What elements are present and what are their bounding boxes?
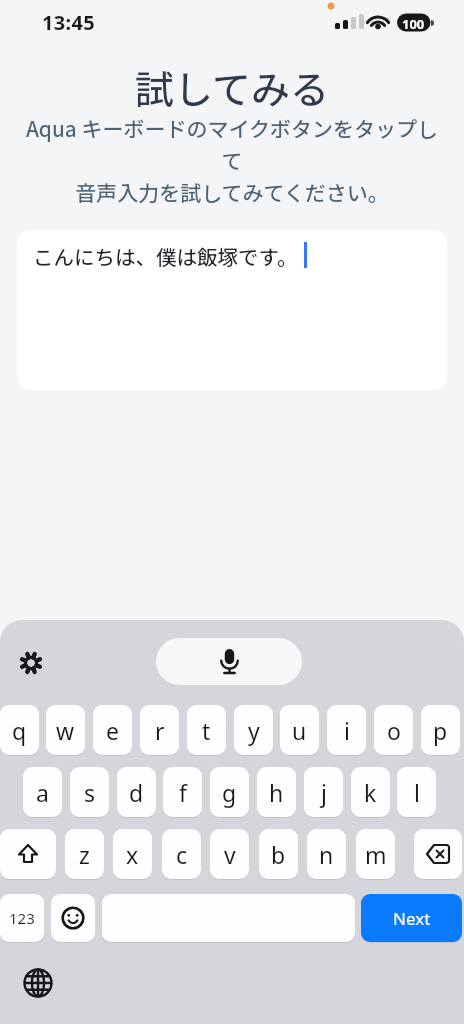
button[interactable]: z (65, 829, 104, 879)
button[interactable]: v (210, 829, 249, 879)
staticText: f (179, 777, 187, 808)
staticText: w (56, 715, 75, 746)
staticText: Aqua キーボードのマイクボタンをタップし て 音声入力を試してみてください。 (0, 113, 464, 207)
staticText: u (292, 715, 307, 746)
staticText: a (36, 777, 49, 808)
staticText: i (344, 715, 350, 746)
button[interactable] (414, 829, 462, 879)
button[interactable]: h (257, 767, 296, 817)
staticText: 13:45 (42, 9, 95, 36)
button[interactable]: a (23, 767, 62, 817)
button[interactable]: k (351, 767, 390, 817)
staticText: Next (393, 907, 431, 930)
button[interactable]: c (162, 829, 201, 879)
button[interactable]: Next (361, 894, 462, 942)
staticText: j (321, 777, 327, 808)
staticText: b (271, 839, 286, 870)
button[interactable]: b (259, 829, 298, 879)
staticText: v (224, 839, 236, 870)
button[interactable]: m (356, 829, 395, 879)
button[interactable] (51, 894, 95, 942)
staticText: 123 (9, 908, 35, 928)
button[interactable]: r (140, 705, 179, 755)
button[interactable] (156, 638, 302, 685)
button[interactable]: d (117, 767, 156, 817)
button[interactable] (0, 829, 56, 879)
staticText: h (269, 777, 284, 808)
staticText: k (364, 777, 377, 808)
staticText: こんにちは、僕は飯塚です。 (33, 241, 298, 271)
staticText: 100 (402, 15, 425, 33)
staticText: d (129, 777, 144, 808)
button[interactable]: l (397, 767, 436, 817)
staticText: t (202, 715, 211, 746)
staticText: z (79, 839, 90, 870)
button[interactable]: i (327, 705, 366, 755)
staticText: x (126, 839, 139, 870)
button[interactable]: y (234, 705, 273, 755)
staticText: n (319, 839, 334, 870)
button[interactable]: p (421, 705, 460, 755)
button[interactable]: f (163, 767, 202, 817)
staticText: p (433, 715, 448, 746)
button[interactable]: g (210, 767, 249, 817)
button[interactable]: q (0, 705, 39, 755)
staticText: l (414, 777, 420, 808)
button[interactable]: t (187, 705, 226, 755)
button[interactable]: w (46, 705, 85, 755)
button[interactable]: x (113, 829, 152, 879)
staticText: g (222, 777, 237, 808)
staticText: y (248, 715, 260, 746)
button[interactable]: s (70, 767, 109, 817)
button[interactable]: j (304, 767, 343, 817)
button[interactable]: 123 (0, 894, 44, 942)
button[interactable] (22, 966, 54, 998)
button[interactable]: こんにちは、僕は飯塚です。 (17, 230, 447, 390)
button[interactable]: n (307, 829, 346, 879)
button[interactable]: o (374, 705, 413, 755)
staticText: s (84, 777, 96, 808)
button[interactable]: u (280, 705, 319, 755)
staticText: o (387, 715, 401, 746)
staticText: q (12, 715, 27, 746)
button[interactable]: e (93, 705, 132, 755)
staticText: m (365, 839, 387, 870)
staticText: c (176, 839, 188, 870)
button[interactable] (102, 894, 355, 942)
staticText: e (106, 715, 119, 746)
button[interactable] (13, 645, 49, 681)
staticText: r (155, 715, 165, 746)
staticText: 試してみる (0, 59, 464, 115)
